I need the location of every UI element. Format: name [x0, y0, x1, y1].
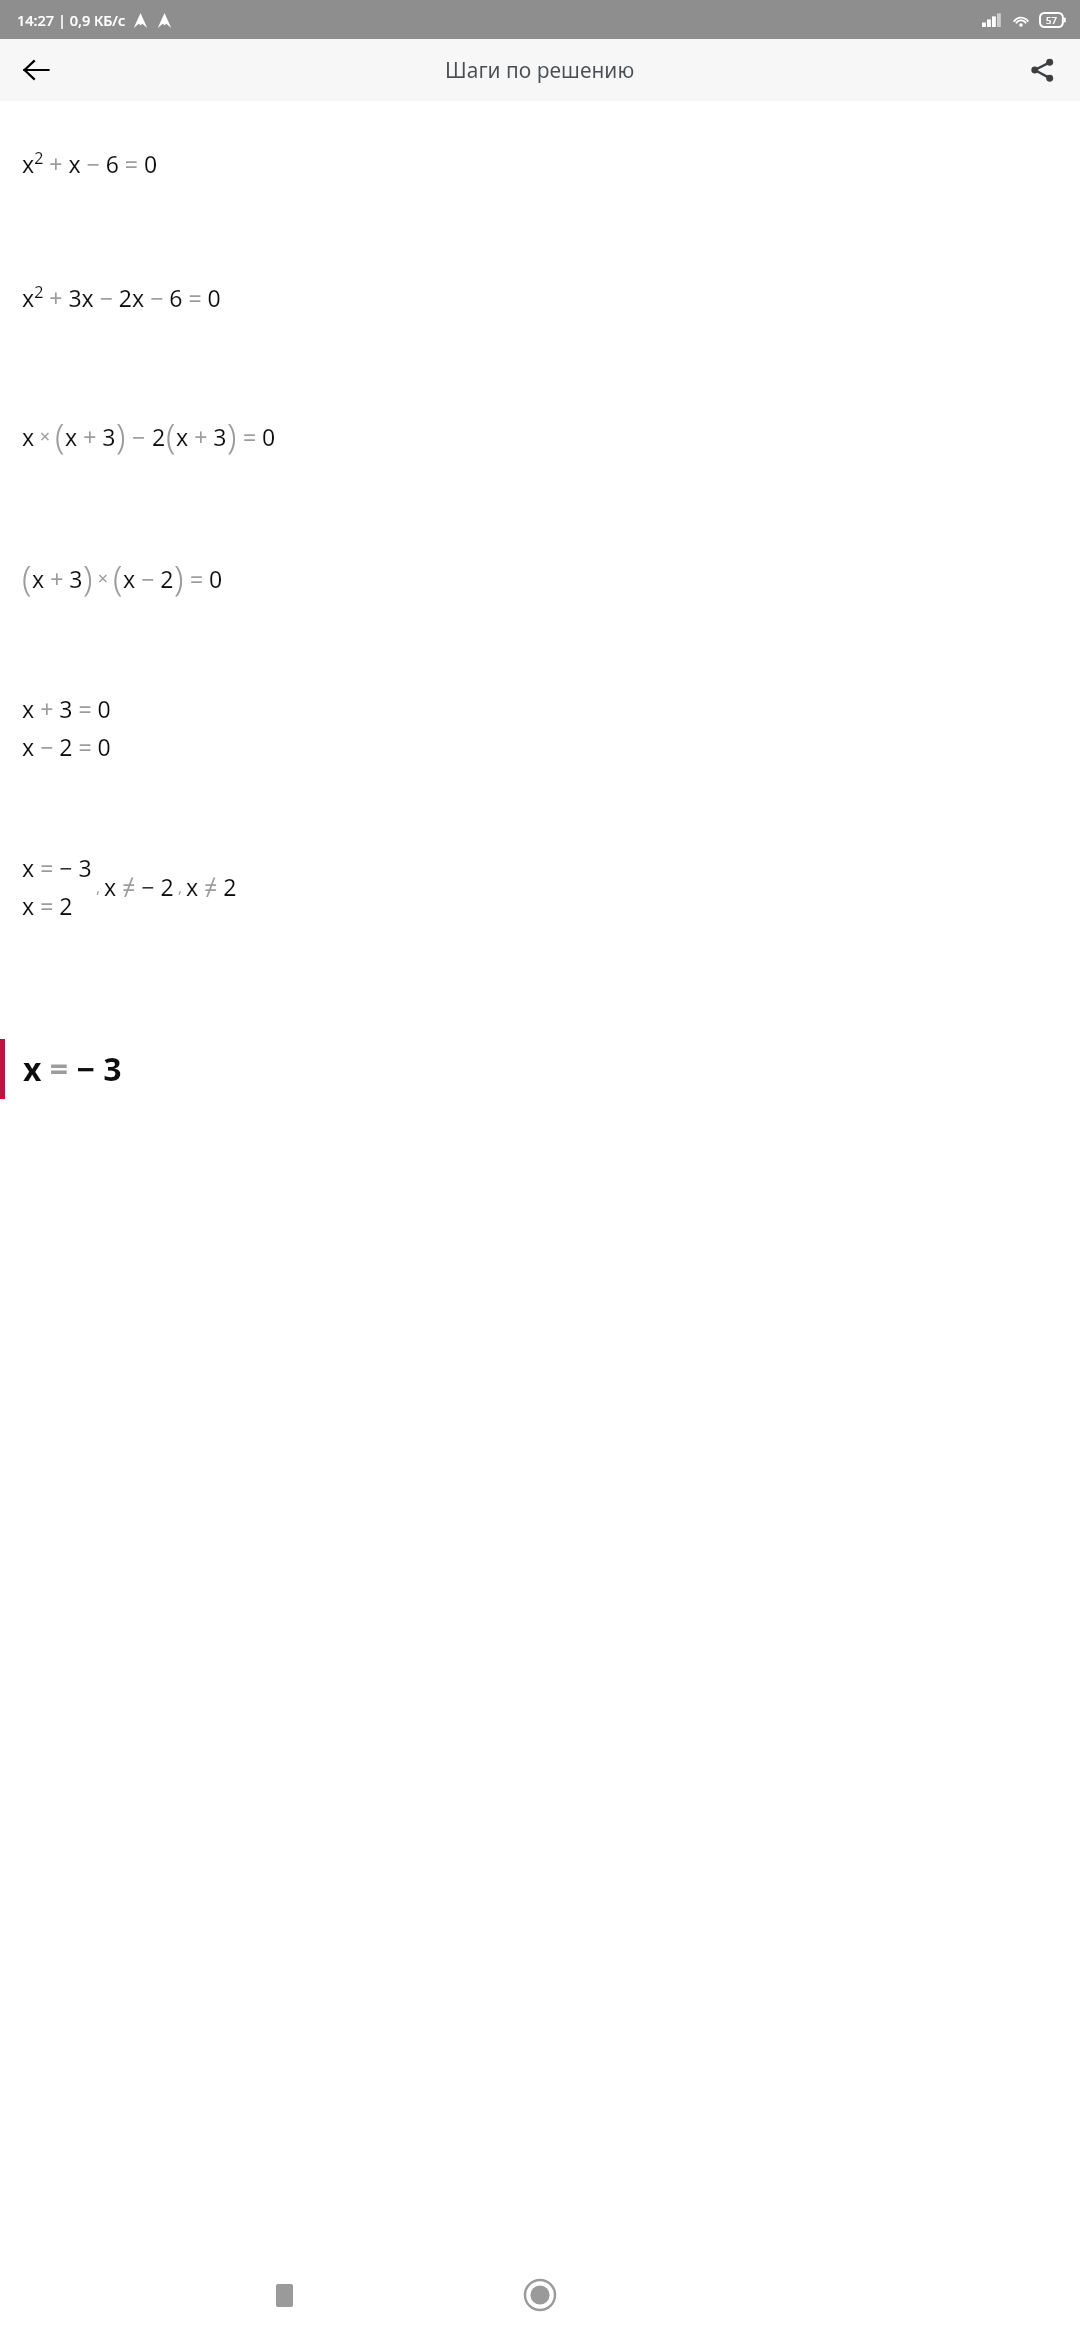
staticText: x	[22, 421, 35, 452]
button[interactable]: Home	[511, 2266, 569, 2324]
staticText: x + 3	[65, 421, 116, 452]
staticText: ,	[92, 877, 104, 897]
staticText: x ≠ − 2	[104, 871, 174, 902]
staticText: (	[113, 555, 123, 601]
staticText: 14:27 | 0,9 КБ/с	[17, 10, 126, 30]
staticText: )	[83, 555, 93, 601]
staticText: )	[174, 555, 184, 601]
staticText: = 0	[237, 421, 276, 452]
staticText: −	[126, 421, 152, 452]
staticText: x + 3 = 0	[22, 693, 111, 724]
button[interactable]: Share	[1016, 44, 1068, 96]
staticText: (	[55, 413, 65, 459]
staticText: )	[116, 413, 126, 459]
button[interactable]: Back	[10, 44, 62, 96]
staticText: Шаги по решению	[445, 56, 635, 85]
staticText: = 0	[184, 563, 223, 594]
staticText: ×	[93, 566, 113, 591]
staticText: ×	[35, 424, 55, 449]
staticText: )	[227, 413, 237, 459]
staticText: x − 2	[123, 563, 174, 594]
staticText: x = 2	[22, 890, 73, 921]
staticText: 57	[1046, 14, 1057, 27]
staticText: x = − 3	[22, 852, 92, 883]
staticText: x − 2 = 0	[22, 731, 111, 762]
staticText: ,	[174, 877, 186, 897]
staticText: x = − 3	[23, 1047, 122, 1091]
staticText: x + 3	[176, 421, 227, 452]
staticText: x + 3	[32, 563, 83, 594]
staticText: (	[22, 555, 32, 601]
staticText: x2 + 3x − 2x − 6 = 0	[22, 281, 221, 313]
staticText: 2	[152, 421, 166, 452]
staticText: x2 + x − 6 = 0	[22, 147, 158, 179]
staticText: x ≠ 2	[186, 871, 237, 902]
staticText: (	[166, 413, 176, 459]
button[interactable]: Recents	[255, 2266, 313, 2324]
